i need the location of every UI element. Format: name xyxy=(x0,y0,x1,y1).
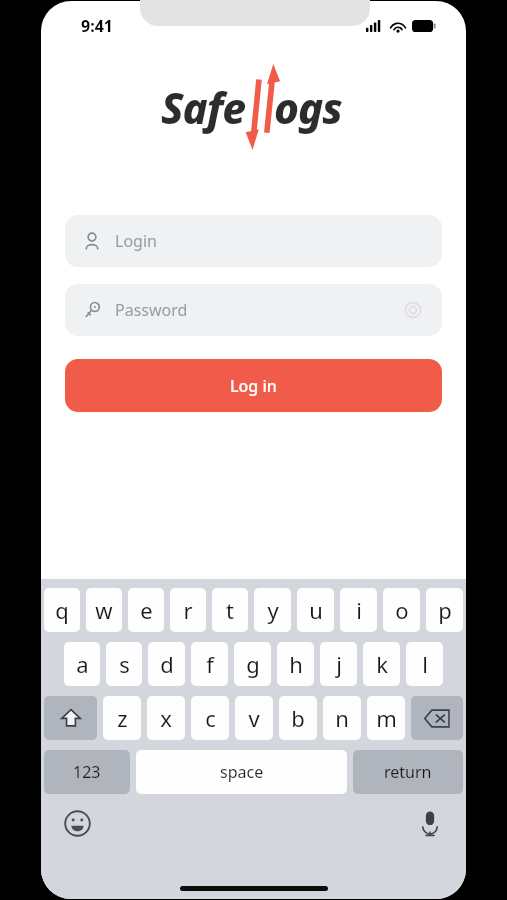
button[interactable]: c xyxy=(191,696,229,740)
staticText: j xyxy=(336,649,342,679)
button[interactable]: y xyxy=(254,588,291,632)
button[interactable]: s xyxy=(106,642,142,686)
button[interactable]: q xyxy=(44,588,80,632)
staticText: i xyxy=(356,595,362,625)
staticText: Password xyxy=(115,299,402,321)
staticText: space xyxy=(220,761,264,783)
staticText: Log in xyxy=(230,375,277,397)
button[interactable]: return xyxy=(353,750,463,794)
staticText: s xyxy=(119,649,130,679)
staticText: 9:41 xyxy=(81,15,113,37)
staticText: h xyxy=(289,649,303,679)
button[interactable]: Password xyxy=(65,284,442,336)
button[interactable]: a xyxy=(64,642,100,686)
staticText: c xyxy=(205,703,216,733)
staticText: a xyxy=(76,649,89,679)
staticText: k xyxy=(376,649,388,679)
button[interactable]: 123 xyxy=(44,750,130,794)
staticText: v xyxy=(248,703,260,733)
button[interactable]: e xyxy=(128,588,164,632)
button[interactable]: v xyxy=(235,696,273,740)
button[interactable]: i xyxy=(340,588,377,632)
button[interactable]: d xyxy=(148,642,185,686)
button[interactable]: k xyxy=(363,642,400,686)
button[interactable]: Dictation xyxy=(414,807,446,839)
button[interactable]: Log in xyxy=(65,359,442,412)
staticText: n xyxy=(335,703,349,733)
staticText: y xyxy=(267,595,279,625)
button[interactable]: Shift xyxy=(44,696,97,740)
staticText: Login xyxy=(115,230,157,252)
staticText: o xyxy=(395,595,409,625)
staticText: ogs xyxy=(274,79,342,136)
button[interactable]: j xyxy=(320,642,357,686)
staticText: l xyxy=(422,649,428,679)
button[interactable]: f xyxy=(191,642,228,686)
staticText: q xyxy=(55,595,69,625)
staticText: e xyxy=(140,595,153,625)
button[interactable]: r xyxy=(170,588,206,632)
staticText: x xyxy=(160,703,172,733)
staticText: w xyxy=(95,595,113,625)
staticText: p xyxy=(438,595,452,625)
button[interactable]: h xyxy=(277,642,314,686)
staticText: return xyxy=(384,761,432,783)
button[interactable]: o xyxy=(383,588,420,632)
button[interactable]: space xyxy=(136,750,347,794)
staticText: m xyxy=(376,703,397,733)
button[interactable]: p xyxy=(426,588,463,632)
button[interactable]: t xyxy=(212,588,248,632)
button[interactable]: b xyxy=(279,696,317,740)
button[interactable]: n xyxy=(323,696,361,740)
button[interactable]: u xyxy=(297,588,334,632)
staticText: 123 xyxy=(73,761,101,783)
button[interactable]: w xyxy=(86,588,122,632)
staticText: Safe xyxy=(161,79,245,136)
staticText: g xyxy=(246,649,260,679)
button[interactable]: Emoji xyxy=(61,807,93,839)
staticText: b xyxy=(291,703,305,733)
button[interactable]: Show password xyxy=(402,299,424,321)
button[interactable]: Login xyxy=(65,215,442,267)
button[interactable]: x xyxy=(147,696,185,740)
staticText: t xyxy=(226,595,234,625)
staticText: r xyxy=(183,595,193,625)
staticText: u xyxy=(309,595,323,625)
button[interactable]: Backspace xyxy=(411,696,463,740)
staticText: z xyxy=(117,703,128,733)
button[interactable]: m xyxy=(367,696,405,740)
button[interactable]: g xyxy=(234,642,271,686)
staticText: f xyxy=(206,649,214,679)
staticText: d xyxy=(160,649,174,679)
button[interactable]: z xyxy=(103,696,141,740)
button[interactable]: l xyxy=(406,642,443,686)
